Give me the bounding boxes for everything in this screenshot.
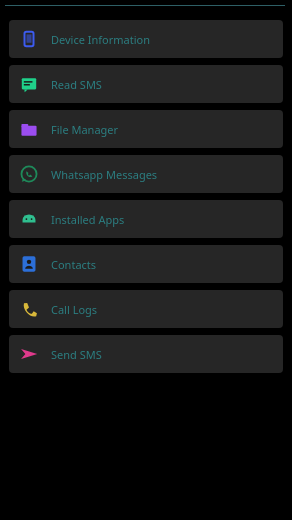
button[interactable]: Send SMS — [9, 335, 283, 373]
button[interactable]: Device Information — [9, 20, 283, 58]
staticText: Read SMS — [51, 77, 102, 92]
staticText: Call Logs — [51, 302, 98, 317]
staticText: Device Information — [51, 32, 151, 47]
staticText: File Manager — [51, 122, 119, 137]
button[interactable]: File Manager — [9, 110, 283, 148]
staticText: Installed Apps — [51, 212, 125, 227]
button[interactable]: Whatsapp Messages — [9, 155, 283, 193]
button[interactable]: Call Logs — [9, 290, 283, 328]
staticText: Contacts — [51, 257, 97, 272]
staticText: Send SMS — [51, 347, 102, 362]
staticText: Whatsapp Messages — [51, 167, 158, 182]
button[interactable]: Contacts — [9, 245, 283, 283]
button[interactable]: Installed Apps — [9, 200, 283, 238]
button[interactable]: Read SMS — [9, 65, 283, 103]
